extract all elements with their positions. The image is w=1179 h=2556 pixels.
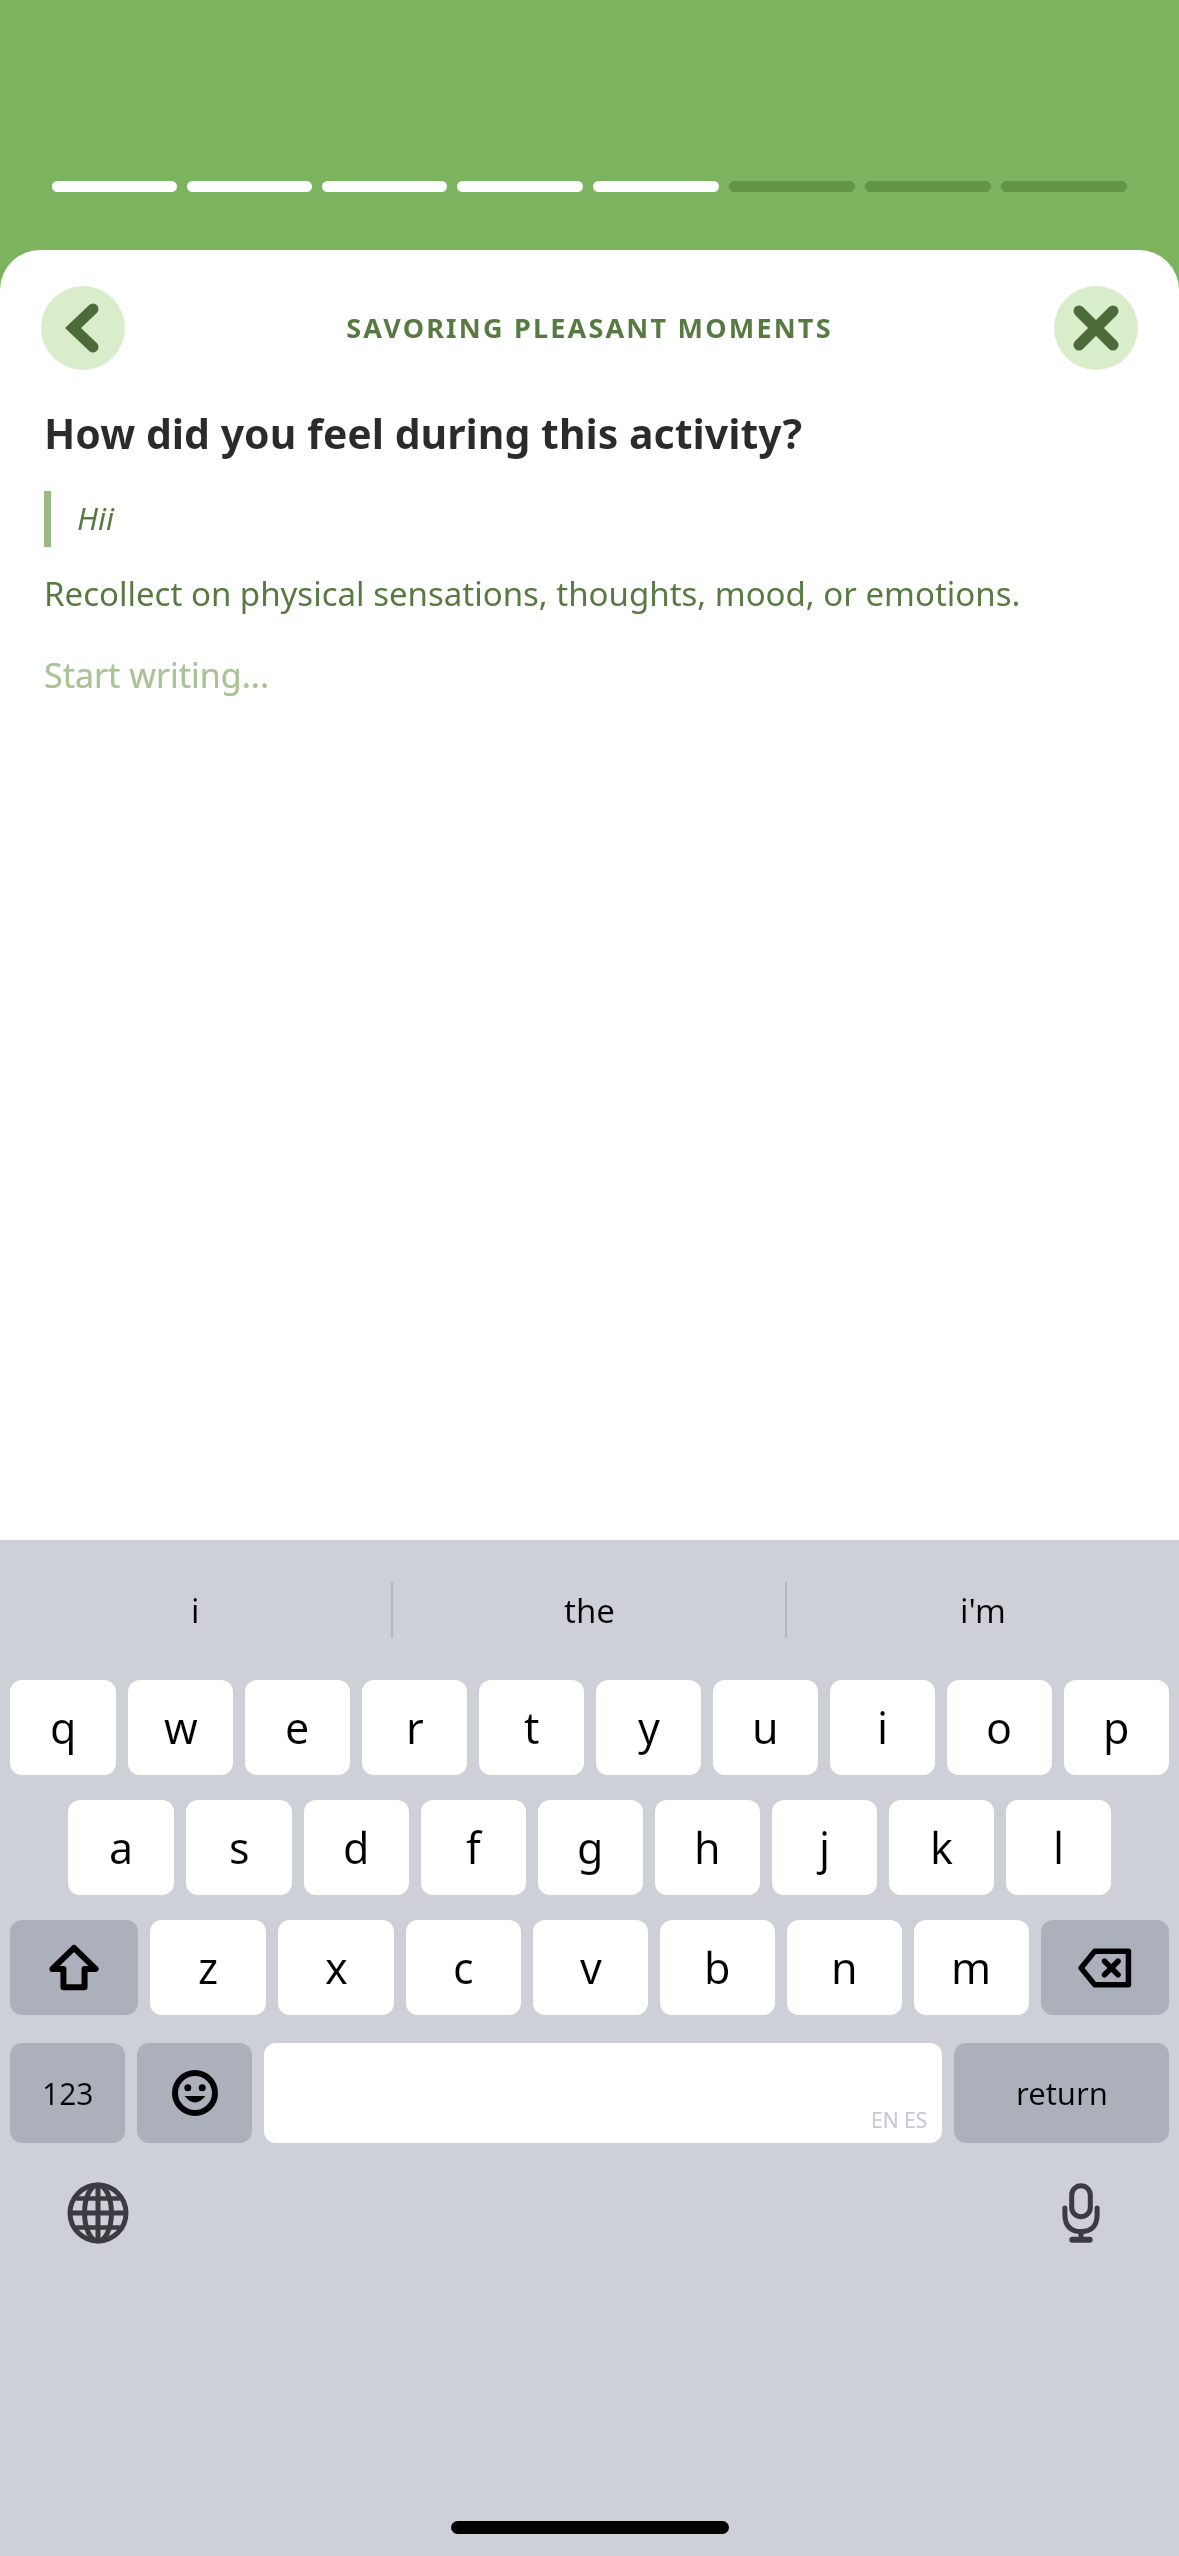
staticText: s (229, 1818, 250, 1877)
button[interactable]: p (1064, 1680, 1169, 1775)
button[interactable]: h (655, 1800, 760, 1895)
button[interactable]: Space (264, 2043, 942, 2143)
button[interactable]: y (596, 1680, 701, 1775)
button[interactable]: r (362, 1680, 467, 1775)
staticText: k (930, 1818, 953, 1877)
button[interactable]: v (533, 1920, 648, 2015)
button[interactable]: s (186, 1800, 292, 1895)
staticText: SAVORING PLEASANT MOMENTS (346, 309, 833, 346)
staticText: Recollect on physical sensations, though… (44, 571, 1021, 616)
staticText: 123 (42, 2073, 94, 2114)
button[interactable]: w (128, 1680, 233, 1775)
staticText: return (1016, 2072, 1108, 2114)
staticText: r (406, 1698, 424, 1757)
button[interactable]: Backspace (1041, 1920, 1169, 2015)
staticText: the (564, 1588, 615, 1633)
staticText: i (191, 1588, 200, 1633)
staticText: h (694, 1818, 721, 1877)
button[interactable]: j (772, 1800, 877, 1895)
button[interactable]: e (245, 1680, 350, 1775)
button[interactable]: Emoji (137, 2043, 252, 2143)
staticText: w (164, 1698, 198, 1757)
staticText: u (752, 1698, 779, 1757)
staticText: x (325, 1938, 348, 1997)
button[interactable]: k (889, 1800, 994, 1895)
staticText: n (831, 1938, 858, 1997)
staticText: t (524, 1698, 540, 1757)
button[interactable]: return (954, 2043, 1169, 2143)
button[interactable]: Back (41, 286, 125, 370)
button[interactable]: the (393, 1540, 785, 1680)
button[interactable]: g (538, 1800, 643, 1895)
button[interactable]: Start writing... (44, 652, 270, 698)
button[interactable]: 123 (10, 2043, 125, 2143)
button[interactable]: d (304, 1800, 409, 1895)
staticText: p (1103, 1698, 1130, 1757)
button[interactable]: o (947, 1680, 1052, 1775)
staticText: e (285, 1698, 310, 1757)
staticText: How did you feel during this activity? (44, 405, 803, 461)
button[interactable]: i (0, 1540, 391, 1680)
staticText: q (50, 1698, 77, 1757)
button[interactable]: i (830, 1680, 935, 1775)
button[interactable]: Close (1054, 286, 1138, 370)
button[interactable]: a (68, 1800, 174, 1895)
button[interactable]: m (914, 1920, 1029, 2015)
button[interactable]: z (150, 1920, 266, 2015)
staticText: z (198, 1938, 219, 1997)
staticText: y (638, 1698, 660, 1757)
staticText: m (951, 1938, 992, 1997)
button[interactable]: Dictation (1043, 2175, 1119, 2251)
staticText: l (1053, 1818, 1065, 1877)
staticText: b (704, 1938, 731, 1997)
staticText: c (453, 1938, 474, 1997)
button[interactable]: x (278, 1920, 394, 2015)
button[interactable]: Switch language (60, 2175, 136, 2251)
staticText: j (819, 1818, 831, 1877)
staticText: d (343, 1818, 370, 1877)
button[interactable]: b (660, 1920, 775, 2015)
staticText: a (109, 1818, 134, 1877)
button[interactable]: i'm (787, 1540, 1179, 1680)
button[interactable]: Shift (10, 1920, 138, 2015)
button[interactable]: c (406, 1920, 521, 2015)
staticText: v (580, 1938, 602, 1997)
staticText: g (577, 1818, 604, 1877)
button[interactable]: l (1006, 1800, 1111, 1895)
button[interactable]: t (479, 1680, 584, 1775)
staticText: f (466, 1818, 481, 1877)
staticText: i (877, 1698, 889, 1757)
button[interactable]: u (713, 1680, 818, 1775)
staticText: i'm (960, 1588, 1006, 1633)
button[interactable]: f (421, 1800, 526, 1895)
staticText: EN ES (871, 2106, 928, 2135)
staticText: o (986, 1698, 1013, 1757)
button[interactable]: n (787, 1920, 902, 2015)
button[interactable]: q (10, 1680, 116, 1775)
staticText: Hii (77, 497, 115, 539)
